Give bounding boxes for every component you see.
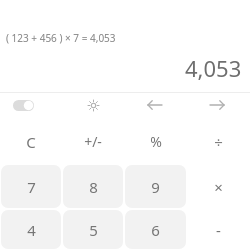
button[interactable]: - <box>188 210 249 249</box>
button[interactable]: 8 <box>63 165 123 208</box>
staticText: 8 <box>89 177 98 197</box>
button[interactable]: × <box>188 165 249 208</box>
staticText: +/- <box>84 132 102 151</box>
staticText: 7 <box>27 177 36 197</box>
staticText: × <box>214 177 223 197</box>
button[interactable]: Toggle degrees radians <box>0 93 62 117</box>
staticText: 5 <box>89 220 98 240</box>
button[interactable]: Move left <box>124 93 186 117</box>
button[interactable]: 5 <box>63 210 123 249</box>
button[interactable]: % <box>125 120 186 163</box>
button[interactable]: 7 <box>1 165 61 208</box>
button[interactable]: 6 <box>125 210 186 249</box>
button[interactable]: +/- <box>63 120 123 163</box>
staticText: 4,053 <box>185 53 242 83</box>
button[interactable]: C <box>1 120 61 163</box>
button[interactable]: 9 <box>125 165 186 208</box>
staticText: 6 <box>151 220 160 240</box>
button[interactable]: Move right <box>186 93 248 117</box>
staticText: C <box>26 132 36 152</box>
staticText: % <box>150 132 162 151</box>
button[interactable]: ÷ <box>188 120 249 163</box>
button[interactable]: 4 <box>1 210 61 249</box>
staticText: ( 123 + 456 ) × 7 = 4,053 <box>6 31 116 45</box>
staticText: 9 <box>151 177 160 197</box>
staticText: - <box>216 220 221 240</box>
staticText: 4 <box>27 220 36 240</box>
staticText: ÷ <box>214 132 223 152</box>
button[interactable]: Brightness <box>62 93 124 117</box>
